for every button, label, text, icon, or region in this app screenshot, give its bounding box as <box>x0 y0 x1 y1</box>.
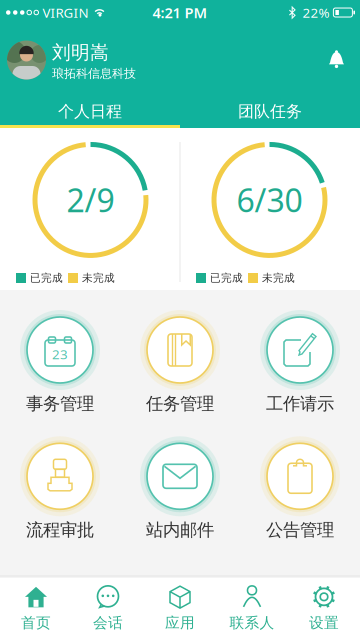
button[interactable]: 23 <box>0 310 120 414</box>
staticText: 流程审批 <box>26 519 94 541</box>
button[interactable]: 工作请示 <box>240 310 360 414</box>
staticText: 应用 <box>165 614 195 632</box>
button[interactable]: 任务管理 <box>120 310 240 414</box>
button[interactable]: 团队任务 <box>180 95 360 128</box>
staticText: 个人日程 <box>58 102 122 121</box>
staticText: 工作请示 <box>266 393 334 414</box>
staticText: 4:21 PM <box>152 3 207 22</box>
staticText: 23 <box>52 345 68 363</box>
staticText: 22% <box>302 4 329 21</box>
staticText: 公告管理 <box>266 519 334 541</box>
staticText: 设置 <box>309 614 339 632</box>
staticText: 已完成 <box>210 271 243 284</box>
button[interactable]: 应用 <box>144 582 216 634</box>
staticText: 会话 <box>93 614 123 632</box>
staticText: 未完成 <box>82 271 115 284</box>
staticText: 联系人 <box>229 614 274 632</box>
staticText: 6/30 <box>236 179 302 221</box>
staticText: 事务管理 <box>26 393 94 414</box>
staticText: VIRGIN <box>42 4 88 21</box>
button[interactable]: 通知 <box>329 51 360 68</box>
staticText: 刘明嵩 <box>52 41 109 64</box>
button[interactable]: 会话 <box>72 582 144 634</box>
button[interactable]: 公告管理 <box>240 436 360 541</box>
staticText: 首页 <box>21 614 51 632</box>
staticText: 站内邮件 <box>146 519 214 541</box>
staticText: 已完成 <box>30 271 63 284</box>
button[interactable]: 流程审批 <box>0 436 120 541</box>
staticText: 未完成 <box>262 271 295 284</box>
staticText: 团队任务 <box>238 102 302 121</box>
staticText: 2/9 <box>66 179 114 221</box>
button[interactable]: 首页 <box>0 582 72 634</box>
button[interactable]: 站内邮件 <box>120 436 240 541</box>
button[interactable]: 个人日程 <box>0 95 180 128</box>
staticText: 琅拓科信息科技 <box>52 66 136 81</box>
staticText: 任务管理 <box>146 393 214 414</box>
button[interactable]: 联系人 <box>216 582 288 634</box>
button[interactable]: 设置 <box>288 582 360 634</box>
